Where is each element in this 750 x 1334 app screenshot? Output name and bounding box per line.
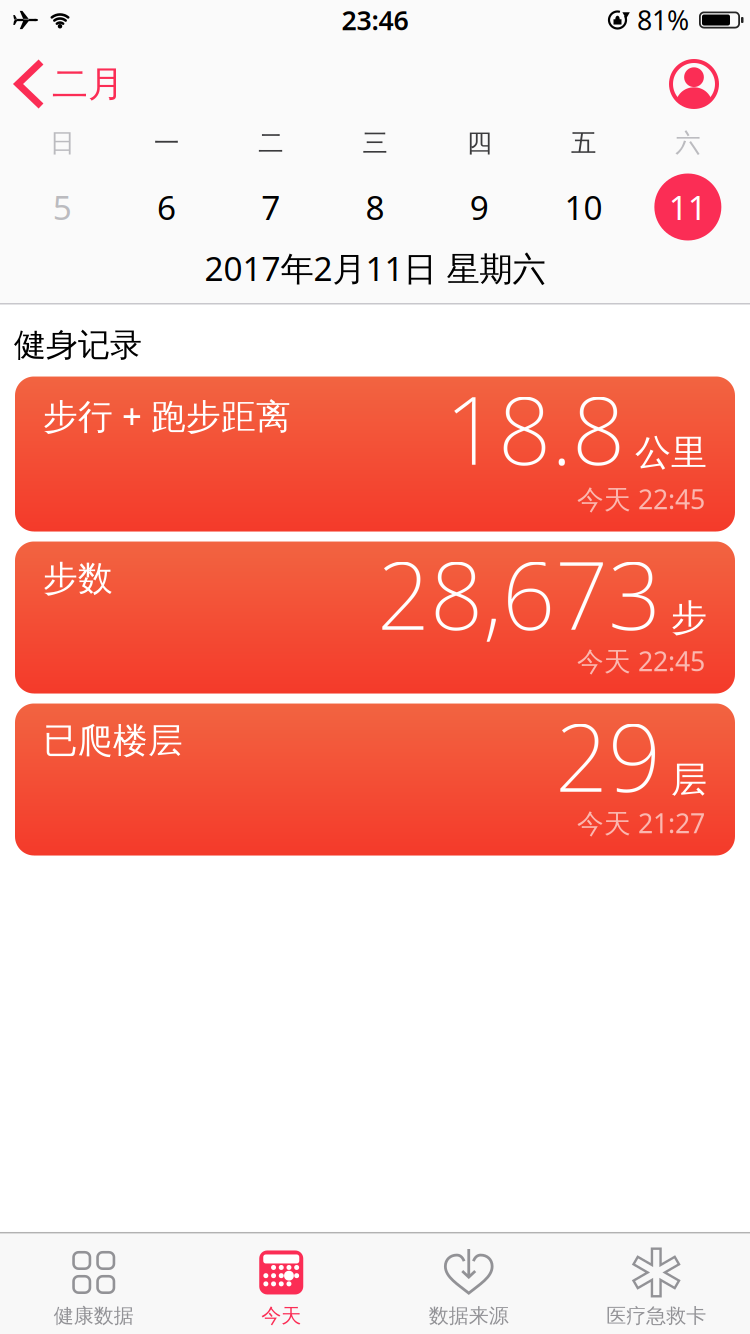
staticText: 层 (671, 758, 707, 802)
staticText: 7 (261, 185, 280, 229)
button[interactable]: 医疗急救卡 (562, 1250, 750, 1328)
staticText: 一 (154, 127, 179, 158)
staticText: 健康数据 (54, 1303, 134, 1328)
staticText: 二 (258, 127, 283, 158)
staticText: 数据来源 (429, 1303, 509, 1328)
button[interactable]: 今天 (187, 1250, 375, 1328)
staticText: 28,673 (377, 531, 661, 655)
button[interactable]: 二月 (0, 62, 124, 106)
staticText: 已爬楼层 (43, 719, 183, 762)
staticText: 步行 + 跑步距离 (43, 392, 291, 438)
staticText: 今天 22:45 (577, 481, 705, 516)
staticText: 23:46 (341, 2, 408, 38)
button[interactable] (669, 59, 719, 109)
staticText: 9 (470, 185, 489, 229)
staticText: 2017年2月11日 星期六 (204, 246, 545, 290)
staticText: 81% (637, 2, 689, 38)
button[interactable]: 8 (323, 172, 427, 242)
button[interactable]: 步行 + 跑步距离 (15, 376, 735, 531)
staticText: 18.8 (445, 366, 625, 490)
staticText: 5 (53, 185, 72, 229)
staticText: 今天 (261, 1303, 301, 1328)
button[interactable]: 11 (636, 172, 740, 242)
staticText: 六 (675, 127, 700, 158)
staticText: 日 (50, 127, 75, 158)
button[interactable]: 5 (10, 172, 114, 242)
staticText: 10 (565, 185, 603, 229)
staticText: 29 (555, 693, 661, 817)
staticText: 三 (362, 127, 387, 158)
button[interactable]: 7 (219, 172, 323, 242)
staticText: 步数 (43, 557, 113, 600)
staticText: 公里 (635, 431, 707, 475)
staticText: 6 (157, 185, 176, 229)
button[interactable]: 已爬楼层 (15, 703, 735, 855)
staticText: 四 (467, 127, 492, 158)
button[interactable]: 6 (114, 172, 219, 242)
staticText: 健身记录 (14, 325, 142, 365)
button[interactable]: 数据来源 (375, 1250, 562, 1328)
staticText: 医疗急救卡 (606, 1303, 706, 1328)
staticText: 8 (365, 185, 384, 229)
button[interactable]: 10 (531, 172, 636, 242)
staticText: 五 (571, 127, 596, 158)
staticText: 二月 (52, 62, 124, 106)
button[interactable]: 步数 (15, 541, 735, 693)
button[interactable]: 健康数据 (0, 1250, 187, 1328)
staticText: 步 (671, 596, 707, 640)
staticText: 今天 22:45 (577, 643, 705, 678)
button[interactable]: 9 (427, 172, 531, 242)
staticText: 今天 21:27 (577, 805, 705, 840)
staticText: 11 (669, 185, 707, 229)
